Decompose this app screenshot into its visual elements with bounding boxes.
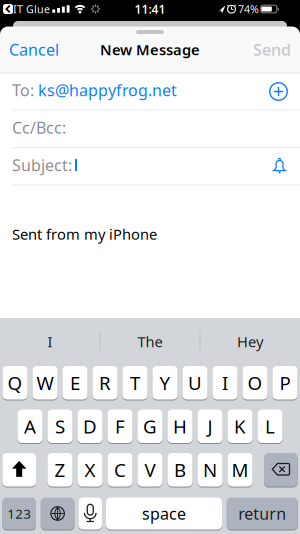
button[interactable]: B — [167, 452, 193, 487]
staticText: L — [265, 414, 275, 439]
button[interactable]: M — [227, 452, 253, 487]
staticText: E — [70, 370, 80, 395]
staticText: I — [222, 370, 228, 395]
staticText: Z — [54, 457, 65, 482]
staticText: N — [203, 457, 217, 482]
button[interactable]: H — [167, 409, 193, 443]
staticText: IT Glue — [13, 2, 50, 16]
staticText: ks@happyfrog.net — [38, 79, 177, 101]
staticText: P — [279, 370, 290, 395]
button[interactable]: T — [122, 365, 148, 400]
staticText: W — [36, 370, 53, 395]
button[interactable]: To: — [0, 75, 300, 105]
button[interactable]: Z — [47, 452, 73, 487]
staticText: G — [143, 414, 157, 439]
staticText: Hey — [237, 332, 263, 351]
button[interactable]: F — [107, 409, 133, 443]
button[interactable]: Add contact — [270, 83, 287, 100]
staticText: return — [238, 503, 286, 524]
button[interactable]: G — [137, 409, 163, 443]
button[interactable]: S — [47, 409, 73, 443]
staticText: 74% — [238, 2, 259, 16]
button[interactable]: Shift — [2, 452, 36, 487]
button[interactable]: Dictate — [78, 497, 102, 530]
staticText: The — [137, 332, 162, 351]
staticText: B — [174, 457, 186, 482]
staticText: Sent from my iPhone — [12, 224, 157, 244]
button[interactable]: L — [257, 409, 283, 443]
button[interactable]: R — [92, 365, 118, 400]
button[interactable]: return — [227, 497, 298, 530]
button[interactable]: Cancel — [9, 39, 59, 60]
button[interactable]: U — [182, 365, 208, 400]
button[interactable]: Q — [2, 365, 28, 400]
button[interactable]: 123 — [2, 497, 36, 530]
staticText: K — [234, 414, 246, 439]
staticText: I — [47, 332, 52, 351]
staticText: F — [115, 414, 125, 439]
staticText: Subject: — [12, 154, 72, 176]
staticText: 123 — [7, 505, 31, 522]
staticText: To: — [12, 79, 38, 101]
staticText: S — [55, 414, 65, 439]
staticText: M — [231, 457, 248, 482]
staticText: 11:41 — [134, 1, 165, 17]
button[interactable]: The — [102, 328, 198, 354]
staticText: U — [188, 370, 202, 395]
staticText: R — [99, 370, 111, 395]
button[interactable]: Notify me — [272, 157, 286, 174]
staticText: J — [207, 414, 212, 439]
button[interactable]: Y — [152, 365, 178, 400]
staticText: Q — [7, 370, 22, 395]
staticText: V — [144, 457, 155, 482]
staticText: A — [24, 414, 36, 439]
staticText: space — [142, 503, 186, 524]
button[interactable]: Next keyboard — [41, 497, 74, 530]
button[interactable]: Hey — [202, 328, 298, 354]
button[interactable]: Back to IT Glue — [0, 0, 52, 18]
staticText: O — [247, 370, 262, 395]
button[interactable]: space — [106, 497, 222, 530]
staticText: C — [114, 457, 126, 482]
button[interactable]: K — [227, 409, 253, 443]
button[interactable]: N — [197, 452, 223, 487]
staticText: Y — [159, 370, 170, 395]
staticText: H — [173, 414, 187, 439]
button[interactable]: P — [272, 365, 298, 400]
staticText: New Message — [100, 40, 200, 59]
button[interactable]: O — [242, 365, 268, 400]
button[interactable]: I — [2, 328, 98, 354]
staticText: D — [83, 414, 97, 439]
button[interactable]: A — [17, 409, 43, 443]
button[interactable]: D — [77, 409, 103, 443]
button[interactable]: Delete — [264, 452, 298, 487]
staticText: Cc/Bcc: — [12, 117, 66, 138]
button[interactable]: I — [212, 365, 238, 400]
button[interactable]: C — [107, 452, 133, 487]
button[interactable]: V — [137, 452, 163, 487]
staticText: X — [84, 457, 95, 482]
button[interactable]: X — [77, 452, 103, 487]
button[interactable]: J — [197, 409, 223, 443]
button[interactable]: W — [32, 365, 58, 400]
button[interactable]: Send — [253, 39, 291, 60]
button[interactable]: Cc/Bcc: — [0, 112, 300, 142]
staticText: T — [130, 370, 140, 395]
staticText: Cancel — [9, 39, 59, 60]
button[interactable]: E — [62, 365, 88, 400]
button[interactable]: Subject: — [0, 150, 300, 180]
staticText: Send — [253, 39, 291, 60]
